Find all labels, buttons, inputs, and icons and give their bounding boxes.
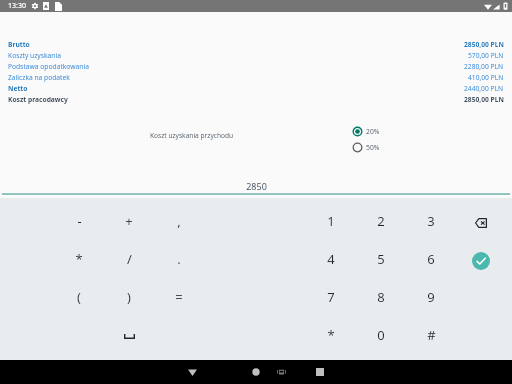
- button[interactable]: Switch keyboard: [269, 360, 293, 384]
- button[interactable]: +: [104, 203, 154, 241]
- button[interactable]: Backspace: [456, 203, 506, 241]
- button[interactable]: Podstawa opodatkowania: [8, 61, 504, 72]
- staticText: 9: [427, 288, 435, 306]
- staticText: ): [127, 288, 131, 306]
- button[interactable]: 8: [356, 279, 406, 317]
- staticText: /: [127, 250, 132, 268]
- button[interactable]: 50%: [352, 139, 380, 155]
- button[interactable]: Enter: [456, 241, 506, 279]
- staticText: =: [175, 288, 183, 306]
- staticText: 2280,00 PLN: [464, 62, 504, 71]
- button[interactable]: 3: [406, 203, 456, 241]
- button[interactable]: Space: [104, 317, 154, 355]
- button[interactable]: 7: [306, 279, 356, 317]
- button[interactable]: Koszt pracodawcy: [8, 94, 504, 105]
- button[interactable]: .: [154, 241, 204, 279]
- staticText: 2850,00 PLN: [464, 95, 504, 104]
- staticText: 410,00 PLN: [468, 73, 504, 82]
- staticText: 13:30: [8, 1, 26, 11]
- button[interactable]: *: [54, 241, 104, 279]
- button[interactable]: Recents: [308, 360, 332, 384]
- button[interactable]: 5: [356, 241, 406, 279]
- staticText: 4: [327, 250, 335, 268]
- button[interactable]: ): [104, 279, 154, 317]
- button[interactable]: 4: [306, 241, 356, 279]
- staticText: 1: [327, 212, 335, 230]
- staticText: 7: [327, 288, 335, 306]
- staticText: #: [427, 326, 436, 344]
- button[interactable]: 0: [356, 317, 406, 355]
- button[interactable]: 2: [356, 203, 406, 241]
- button[interactable]: Back: [180, 360, 204, 384]
- staticText: 50%: [366, 143, 380, 152]
- button[interactable]: =: [154, 279, 204, 317]
- staticText: Koszt uzyskania przychodu: [150, 131, 234, 140]
- staticText: 5: [377, 250, 385, 268]
- staticText: Netto: [8, 84, 28, 93]
- staticText: (: [77, 288, 81, 306]
- staticText: 20%: [366, 127, 380, 136]
- staticText: .: [177, 250, 181, 268]
- staticText: 6: [427, 250, 435, 268]
- button[interactable]: Home: [244, 360, 268, 384]
- staticText: 2850: [246, 180, 267, 192]
- staticText: Zaliczka na podatek: [8, 73, 70, 82]
- button[interactable]: Zaliczka na podatek: [8, 72, 504, 83]
- button[interactable]: Koszty uzyskania: [8, 50, 504, 61]
- staticText: -: [77, 212, 82, 230]
- button[interactable]: ,: [154, 203, 204, 241]
- button[interactable]: (: [54, 279, 104, 317]
- button[interactable]: #: [406, 317, 456, 355]
- button[interactable]: 1: [306, 203, 356, 241]
- staticText: 570,00 PLN: [468, 51, 504, 60]
- staticText: 2: [377, 212, 385, 230]
- button[interactable]: *: [306, 317, 356, 355]
- staticText: 2440,00 PLN: [464, 84, 504, 93]
- button[interactable]: 9: [406, 279, 456, 317]
- staticText: 0: [377, 326, 385, 344]
- staticText: Podstawa opodatkowania: [8, 62, 89, 71]
- staticText: 3: [427, 212, 435, 230]
- button[interactable]: Netto: [8, 83, 504, 94]
- staticText: *: [75, 250, 83, 268]
- staticText: Brutto: [8, 40, 30, 49]
- button[interactable]: -: [54, 203, 104, 241]
- button[interactable]: 6: [406, 241, 456, 279]
- button[interactable]: Brutto: [8, 39, 504, 50]
- staticText: Koszty uzyskania: [8, 51, 61, 60]
- staticText: 8: [377, 288, 385, 306]
- button[interactable]: /: [104, 241, 154, 279]
- staticText: *: [327, 326, 335, 344]
- staticText: +: [125, 212, 133, 230]
- staticText: 2850,00 PLN: [464, 40, 504, 49]
- staticText: ,: [177, 212, 181, 230]
- button[interactable]: 20%: [352, 123, 380, 139]
- staticText: Koszt pracodawcy: [8, 95, 68, 104]
